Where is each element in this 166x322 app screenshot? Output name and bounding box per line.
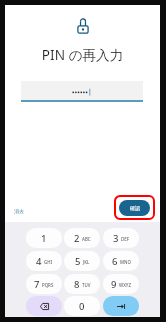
button[interactable]: Next: [103, 296, 139, 316]
staticText: JKL: [83, 259, 90, 265]
staticText: MNO: [120, 259, 131, 265]
staticText: GHI: [44, 259, 53, 265]
button[interactable]: 3: [103, 228, 139, 248]
button[interactable]: 4: [26, 251, 62, 271]
staticText: 7: [34, 278, 40, 291]
staticText: 2: [74, 232, 80, 245]
button[interactable]: 7: [26, 274, 62, 294]
staticText: 消去: [14, 208, 24, 214]
staticText: TUV: [82, 282, 91, 288]
staticText: 1: [41, 232, 47, 245]
button[interactable]: 5: [64, 251, 100, 271]
staticText: DEF: [121, 236, 129, 242]
staticText: PIN の再入力: [5, 45, 160, 64]
staticText: PQRS: [42, 282, 54, 288]
button[interactable]: Backspace: [26, 296, 62, 316]
staticText: 9: [111, 278, 117, 291]
button[interactable]: 1: [26, 228, 62, 248]
staticText: 6: [112, 255, 118, 268]
staticText: 5: [75, 255, 81, 268]
staticText: 8: [74, 278, 80, 291]
staticText: WXYZ: [119, 282, 131, 288]
button[interactable]: 2: [64, 228, 100, 248]
button[interactable]: 0: [64, 296, 100, 316]
button[interactable]: 8: [64, 274, 100, 294]
button[interactable]: 消去: [14, 208, 24, 214]
staticText: 確認: [130, 205, 140, 211]
button[interactable]: 6: [103, 251, 139, 271]
button[interactable]: 9: [103, 274, 139, 294]
staticText: 4: [36, 255, 42, 268]
staticText: ABC: [82, 236, 91, 242]
staticText: 0: [79, 300, 85, 313]
staticText: 3: [113, 232, 119, 245]
button[interactable]: 確認: [114, 195, 155, 220]
